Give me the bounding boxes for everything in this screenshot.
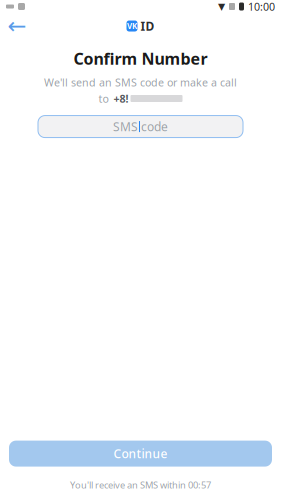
staticText: ID [140,18,154,34]
staticText: Confirm Number [73,48,207,69]
button[interactable]: Continue [9,441,272,467]
staticText: +8! [113,91,128,106]
staticText: We'll send an SMS code or make a call [44,75,237,89]
staticText: You'll receive an SMS within 00:57 [70,479,211,491]
staticText: ▼ [218,1,225,12]
staticText: code [141,119,168,134]
staticText: 10:00 [248,0,275,14]
staticText: to [98,91,111,106]
button[interactable]: Back [0,11,34,41]
staticText: SMS [113,119,138,134]
staticText: VK [127,21,137,31]
staticText: Continue [113,446,167,461]
staticText: ← [7,13,26,39]
